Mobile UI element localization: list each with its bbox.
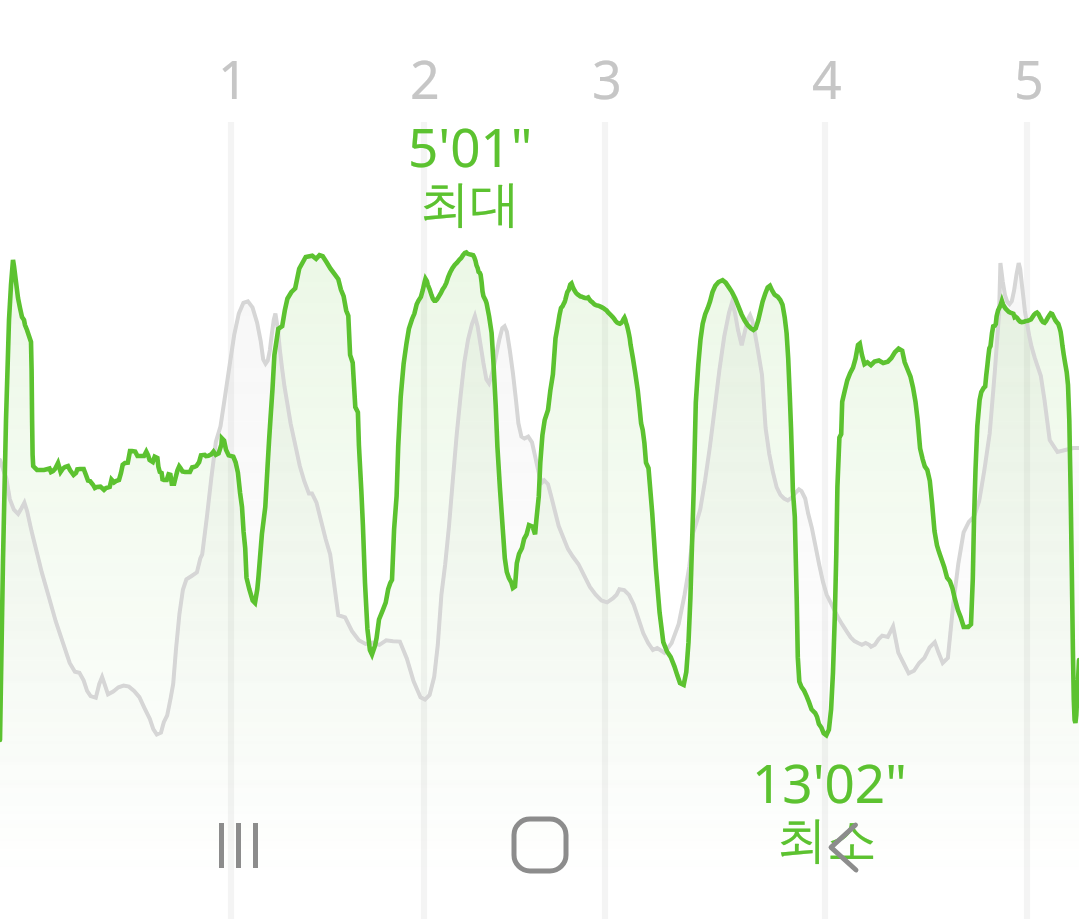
staticText: 5 [1014,43,1044,114]
button[interactable]: Back [791,792,901,902]
staticText: 2 [410,43,440,114]
staticText: 13'02" [752,746,907,818]
staticText: 4 [812,43,842,114]
button[interactable]: Recent apps [186,790,296,900]
button[interactable]: Home [485,790,595,900]
staticText: 3 [592,43,622,114]
staticText: 1 [218,43,248,114]
staticText: 최소 [777,809,877,872]
staticText: 5'01" [408,110,533,182]
staticText: 최대 [420,173,520,236]
